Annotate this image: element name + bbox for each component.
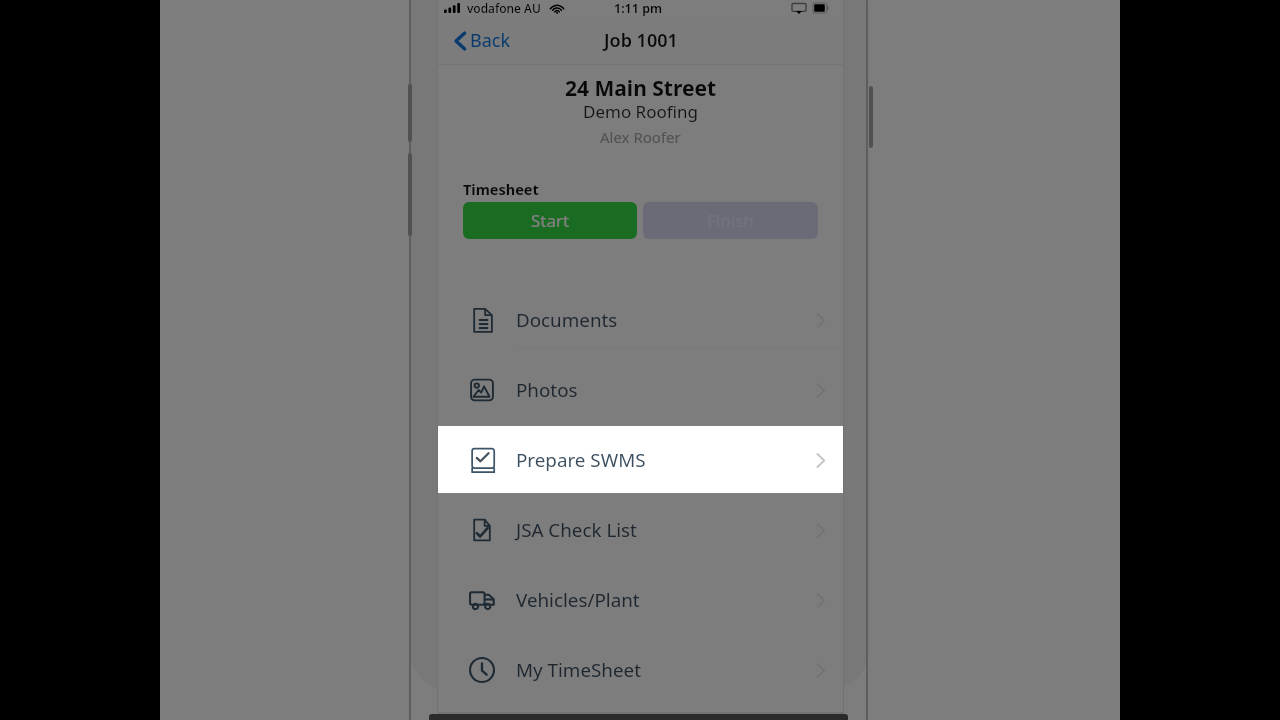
button[interactable]: Prepare SWMS — [438, 425, 843, 495]
staticText: Vehicles/Plant — [516, 587, 640, 613]
staticText: Start — [531, 209, 570, 232]
button[interactable]: Photos — [438, 355, 843, 425]
button[interactable]: Vehicles/Plant — [438, 565, 843, 635]
staticText: 24 Main Street — [565, 74, 717, 103]
button[interactable]: Start — [463, 202, 637, 239]
staticText: vodafone AU — [467, 0, 541, 16]
staticText: Timesheet — [463, 179, 539, 199]
button[interactable]: JSA Check List — [438, 495, 843, 565]
staticText: JSA Check List — [516, 517, 637, 543]
staticText: Documents — [516, 307, 618, 333]
staticText: 1:11 pm — [614, 0, 662, 16]
staticText: Demo Roofing — [583, 100, 698, 123]
staticText: Back — [470, 28, 511, 53]
staticText: Prepare SWMS — [516, 447, 646, 473]
staticText: Photos — [516, 377, 578, 403]
staticText: My TimeSheet — [516, 657, 641, 683]
staticText: Alex Roofer — [600, 127, 681, 147]
button[interactable]: Documents — [438, 285, 843, 355]
staticText: Job 1001 — [604, 28, 678, 53]
button[interactable]: My TimeSheet — [438, 635, 843, 705]
button[interactable]: Back — [453, 28, 511, 53]
